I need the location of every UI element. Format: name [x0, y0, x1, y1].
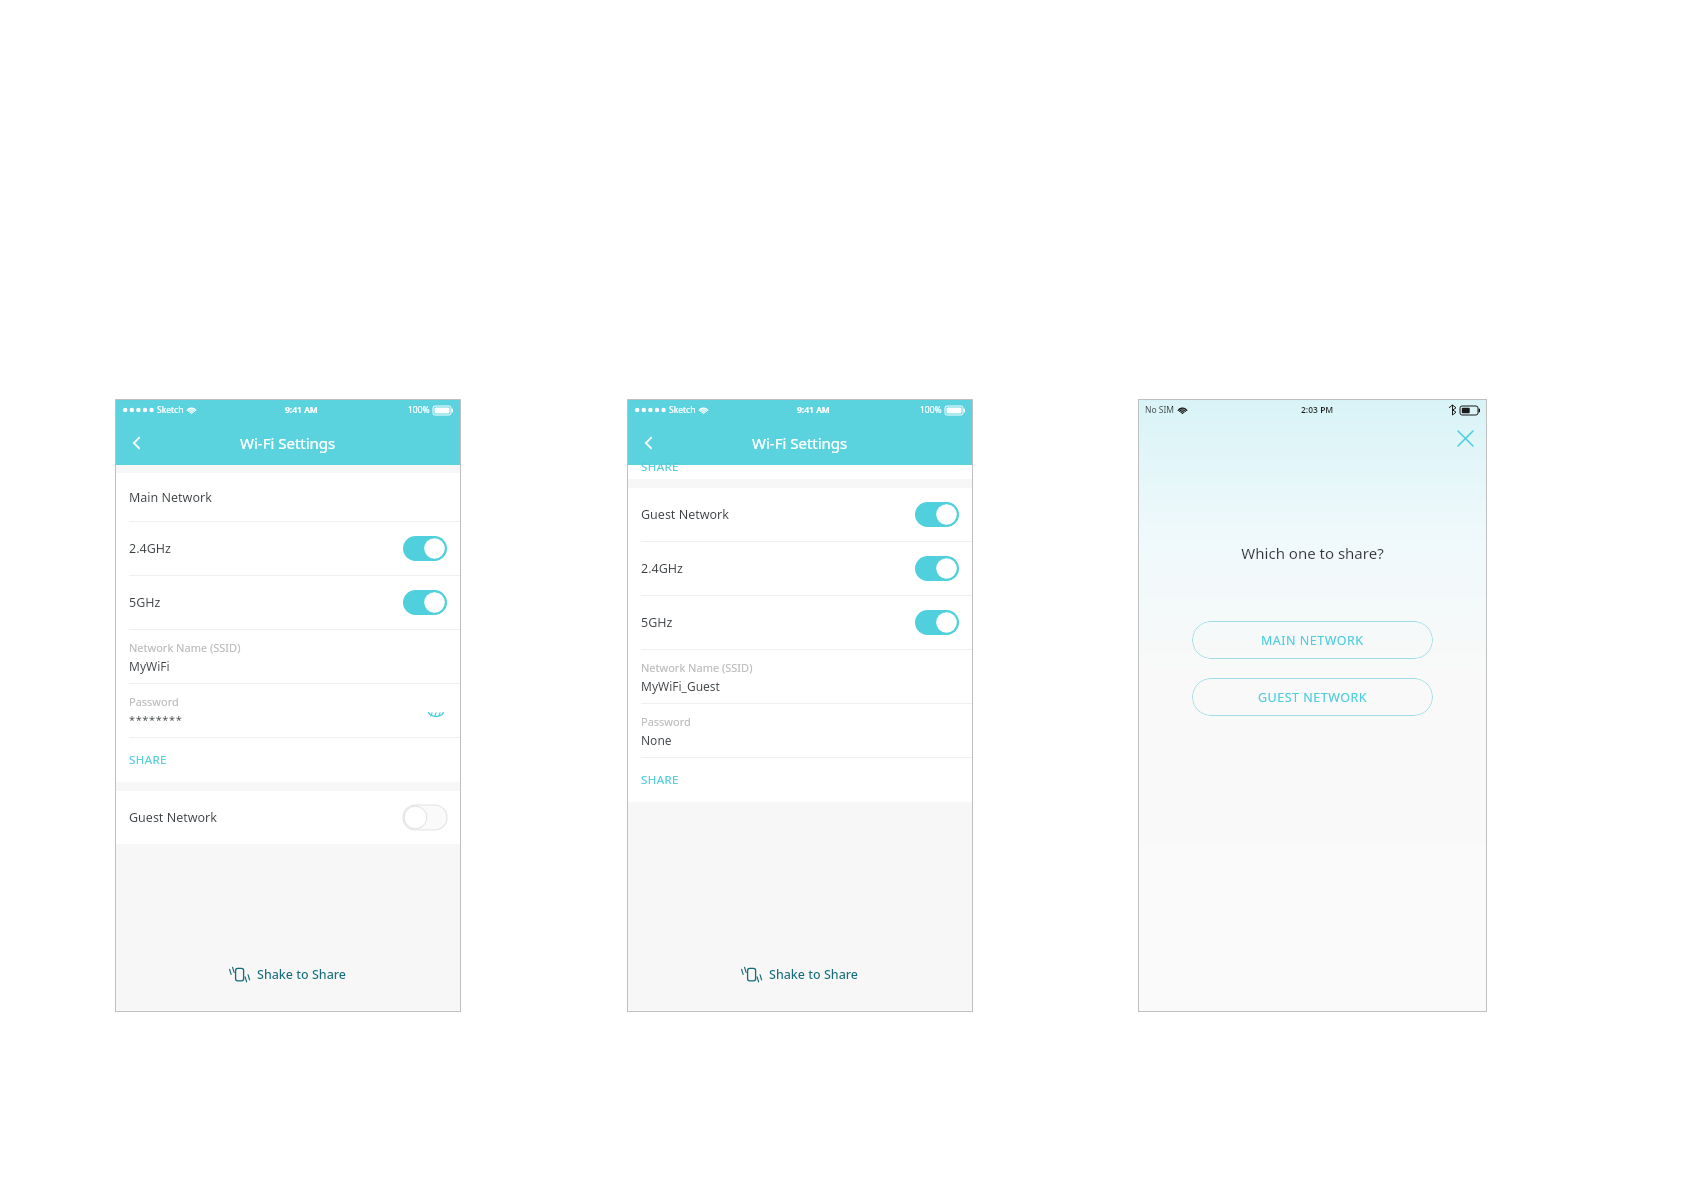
staticText: 100%	[920, 404, 942, 416]
button[interactable]: Back	[627, 421, 671, 465]
staticText: GUEST NETWORK	[1258, 689, 1367, 706]
staticText: Sketch	[669, 404, 696, 416]
staticText: No SIM	[1145, 404, 1175, 416]
button[interactable]: 2.4GHz	[627, 542, 973, 596]
staticText: 2:03 PM	[1301, 404, 1334, 416]
staticText: 2.4GHz	[129, 540, 171, 557]
staticText: Shake to Share	[769, 966, 859, 983]
staticText: 9:41 AM	[285, 404, 318, 416]
button[interactable]: Guest Network	[115, 791, 461, 844]
button[interactable]: Close	[1451, 424, 1479, 452]
staticText: MAIN NETWORK	[1261, 632, 1364, 649]
button[interactable]: Shake to Share	[115, 954, 461, 994]
staticText: 100%	[408, 404, 430, 416]
staticText: Network Name (SSID)	[641, 660, 753, 675]
staticText: Shake to Share	[257, 966, 347, 983]
button[interactable]: SHARE	[627, 758, 973, 802]
button[interactable]: Back	[115, 421, 159, 465]
staticText: None	[641, 732, 672, 748]
staticText: Password	[129, 694, 179, 709]
button[interactable]: Network Name (SSID)	[115, 630, 461, 684]
staticText: Network Name (SSID)	[129, 640, 241, 655]
button[interactable]: Shake to Share	[627, 954, 973, 994]
staticText: Guest Network	[129, 809, 217, 826]
button[interactable]: GUEST NETWORK	[1192, 678, 1433, 716]
staticText: 9:41 AM	[797, 404, 830, 416]
button[interactable]: Password	[115, 684, 461, 738]
button[interactable]: 2.4GHz	[115, 522, 461, 576]
staticText: Which one to share?	[1138, 543, 1487, 563]
button[interactable]: Network Name (SSID)	[627, 650, 973, 704]
staticText: 5GHz	[129, 594, 161, 611]
staticText: Wi-Fi Settings	[240, 433, 336, 453]
staticText: SHARE	[641, 772, 679, 788]
staticText: Sketch	[157, 404, 184, 416]
button[interactable]: Main Network	[115, 473, 461, 521]
button[interactable]: Show password	[425, 700, 447, 722]
button[interactable]: Guest Network	[627, 488, 973, 542]
button[interactable]: Password	[627, 704, 973, 758]
staticText: SHARE	[129, 752, 167, 768]
button[interactable]: MAIN NETWORK	[1192, 621, 1433, 659]
staticText: Password	[641, 714, 691, 729]
staticText: 5GHz	[641, 614, 673, 631]
staticText: MyWiFi_Guest	[641, 678, 720, 694]
staticText: MyWiFi	[129, 658, 170, 674]
button[interactable]: 5GHz	[115, 576, 461, 630]
button[interactable]: SHARE	[115, 738, 461, 782]
staticText: Main Network	[129, 489, 212, 506]
staticText: Wi-Fi Settings	[752, 433, 848, 453]
staticText: SHARE	[641, 459, 679, 473]
button[interactable]: 5GHz	[627, 596, 973, 650]
staticText: ********	[129, 712, 183, 727]
staticText: 2.4GHz	[641, 560, 683, 577]
staticText: Guest Network	[641, 506, 729, 523]
